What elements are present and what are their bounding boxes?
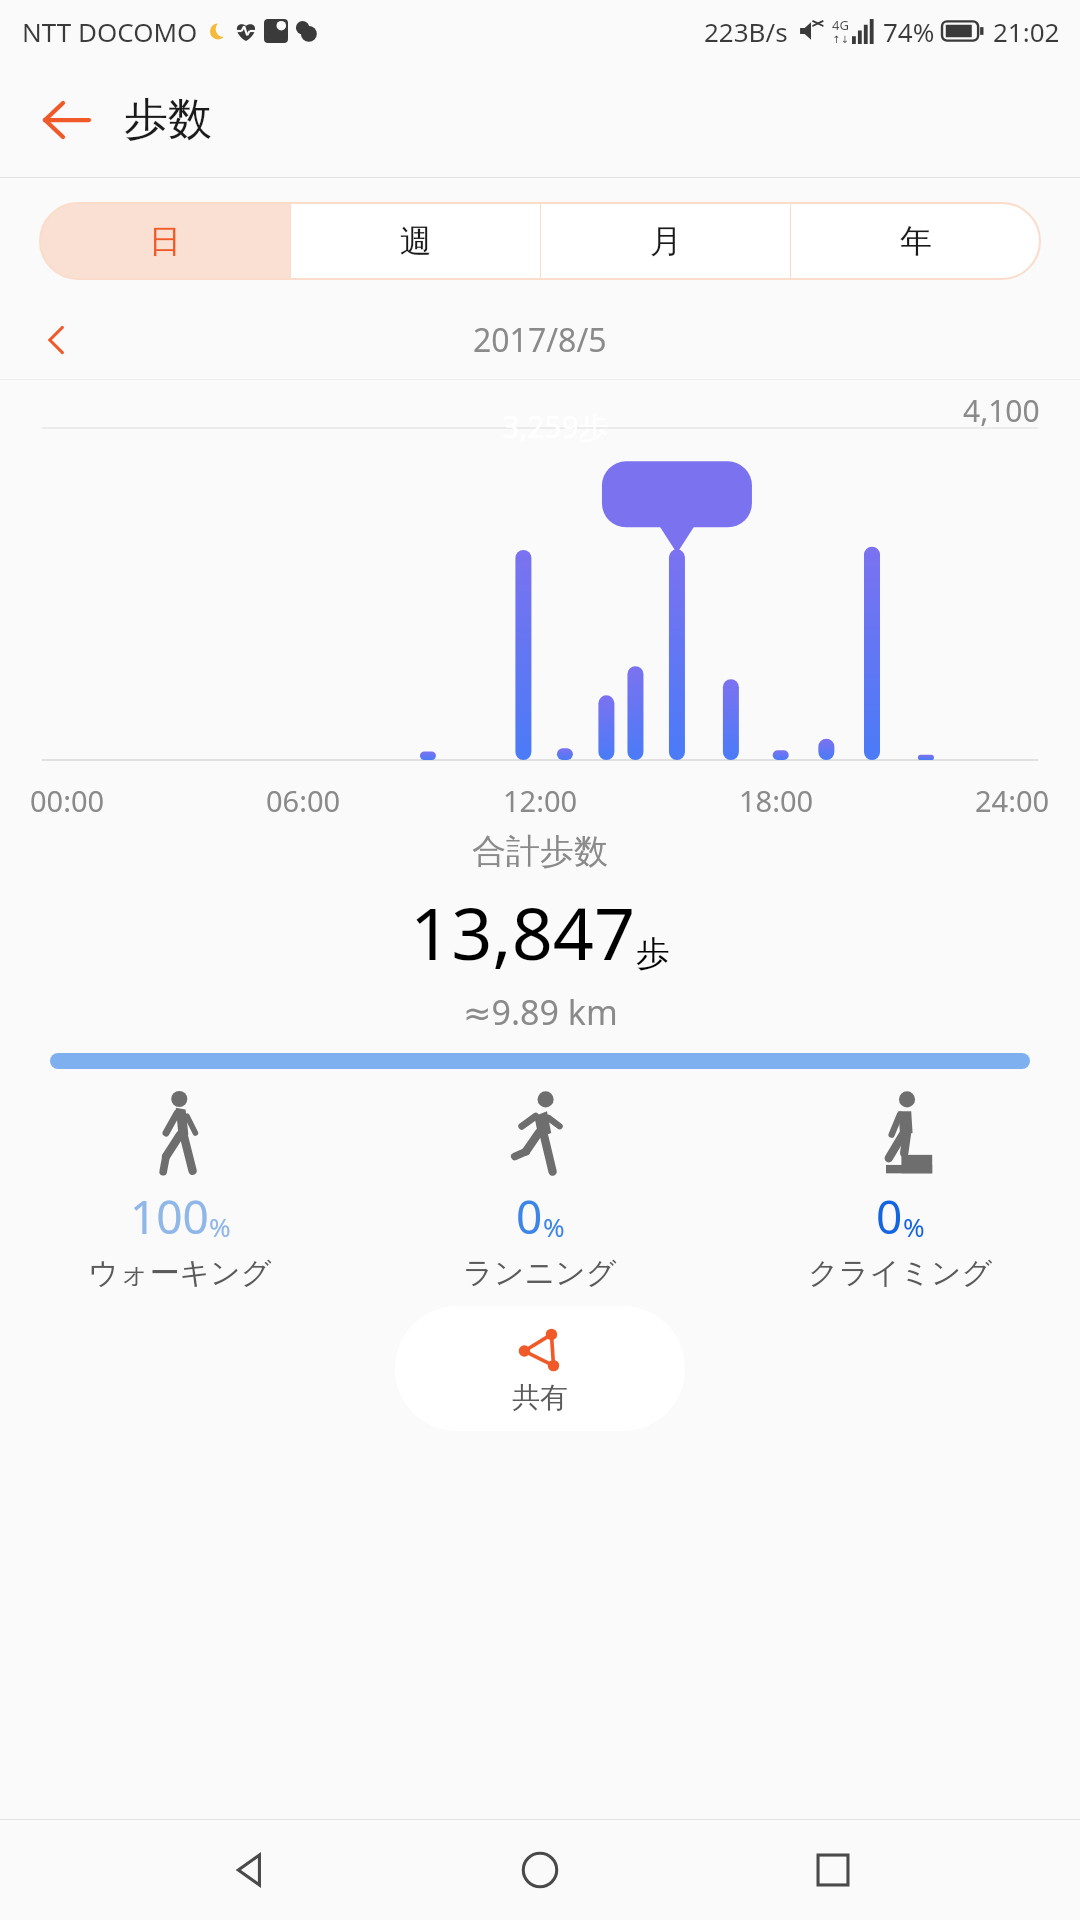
- staticText: 年: [900, 221, 932, 261]
- staticText: 0: [876, 1185, 903, 1248]
- staticText: %: [903, 1209, 925, 1244]
- staticText: ランニング: [463, 1254, 617, 1292]
- staticText: 週: [400, 221, 432, 261]
- staticText: 日: [149, 221, 181, 261]
- staticText: ↑↓: [832, 34, 849, 46]
- staticText: 18:00: [739, 781, 814, 820]
- staticText: 100: [130, 1185, 209, 1248]
- staticText: 223B/s: [704, 14, 788, 49]
- staticText: 21:02: [993, 14, 1060, 49]
- staticText: 合計歩数: [472, 830, 608, 873]
- staticText: 0: [516, 1185, 543, 1248]
- button[interactable]: Back: [203, 1825, 293, 1915]
- staticText: 13,847: [410, 883, 636, 981]
- staticText: クライミング: [808, 1254, 993, 1292]
- staticText: %: [543, 1209, 565, 1244]
- staticText: %: [209, 1209, 231, 1244]
- button[interactable]: Back: [30, 84, 102, 156]
- button[interactable]: Home: [495, 1825, 585, 1915]
- staticText: 74%: [883, 14, 935, 49]
- button[interactable]: Previous day: [24, 307, 90, 373]
- button[interactable]: Recents: [788, 1825, 878, 1915]
- staticText: 4,100: [963, 390, 1040, 431]
- button[interactable]: 100: [0, 1091, 360, 1292]
- staticText: ウォーキング: [88, 1254, 272, 1292]
- button[interactable]: 週: [291, 203, 540, 279]
- staticText: 00:00: [30, 781, 105, 820]
- staticText: NTT DOCOMO: [22, 14, 198, 49]
- staticText: 24:00: [975, 781, 1050, 820]
- staticText: 歩数: [124, 92, 212, 147]
- staticText: 12:00: [503, 781, 578, 820]
- button[interactable]: 年: [791, 203, 1040, 279]
- button[interactable]: 日: [40, 203, 290, 279]
- button[interactable]: 0: [360, 1091, 720, 1292]
- staticText: 06:00: [266, 781, 341, 820]
- staticText: 月: [650, 221, 682, 261]
- staticText: 歩: [636, 932, 670, 975]
- button[interactable]: 月: [541, 203, 790, 279]
- staticText: 2017/8/5: [473, 318, 607, 362]
- staticText: 3,259歩: [502, 406, 609, 447]
- staticText: 共有: [512, 1380, 568, 1415]
- staticText: ≈9.89 km: [463, 989, 618, 1035]
- staticText: 4G: [832, 16, 849, 34]
- button[interactable]: 0: [720, 1091, 1080, 1292]
- button[interactable]: 共有: [395, 1306, 685, 1431]
